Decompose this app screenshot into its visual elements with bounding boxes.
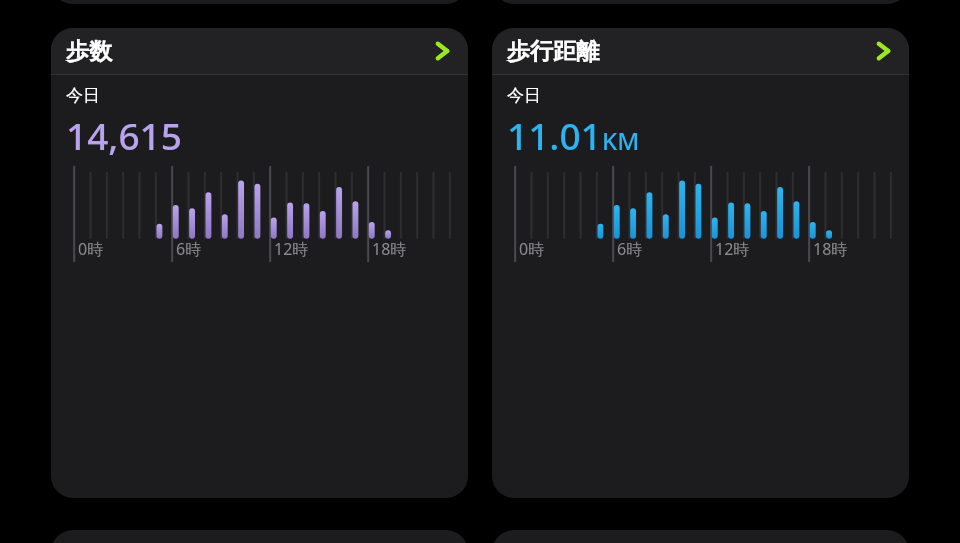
staticText: 今日	[66, 85, 100, 106]
button[interactable]: 歩行距離	[492, 28, 909, 498]
staticText: 12時	[274, 238, 309, 260]
staticText: 0時	[519, 238, 545, 260]
staticText: 18時	[372, 238, 407, 260]
staticText: 6時	[617, 238, 643, 260]
staticText: 14,615	[66, 110, 182, 160]
button[interactable]: 歩数	[51, 28, 468, 498]
staticText: 6時	[176, 238, 202, 260]
staticText: 12時	[715, 238, 750, 260]
staticText: 11.01	[507, 110, 602, 160]
staticText: 今日	[507, 85, 541, 106]
staticText: 18時	[813, 238, 848, 260]
staticText: 歩行距離	[507, 37, 599, 66]
staticText: 歩数	[66, 37, 112, 66]
staticText: KM	[602, 124, 640, 157]
staticText: 0時	[78, 238, 104, 260]
